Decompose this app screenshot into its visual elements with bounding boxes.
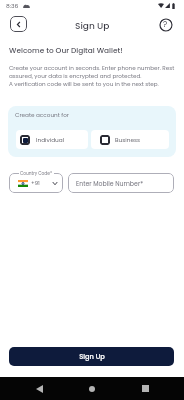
- button[interactable]: Individual: [16, 130, 88, 149]
- staticText: 8:36: [6, 2, 19, 10]
- staticText: Business: [115, 136, 141, 144]
- staticText: Individual: [36, 136, 65, 144]
- button[interactable]: Sign Up: [9, 347, 174, 366]
- button[interactable]: Business: [91, 130, 169, 149]
- button[interactable]: Back: [10, 16, 27, 32]
- button[interactable]: Home: [81, 377, 103, 400]
- staticText: Welcome to Our Digital Wallet!: [9, 45, 123, 55]
- staticText: +91: [31, 179, 40, 187]
- button[interactable]: Recent apps: [134, 377, 156, 400]
- staticText: A verification code will be sent to you …: [9, 80, 159, 88]
- button[interactable]: Back: [28, 377, 50, 400]
- staticText: Sign Up: [79, 352, 105, 361]
- staticText: Country Code*: [20, 170, 53, 176]
- staticText: Create your account in seconds. Enter ph…: [9, 64, 177, 80]
- button[interactable]: Enter Mobile Number*: [68, 173, 174, 193]
- staticText: ?: [163, 19, 168, 30]
- staticText: Enter Mobile Number*: [76, 179, 144, 188]
- button[interactable]: +91: [9, 173, 63, 193]
- button[interactable]: Help: [158, 17, 173, 32]
- staticText: Create account for: [15, 111, 69, 119]
- staticText: Sign Up: [75, 20, 110, 33]
